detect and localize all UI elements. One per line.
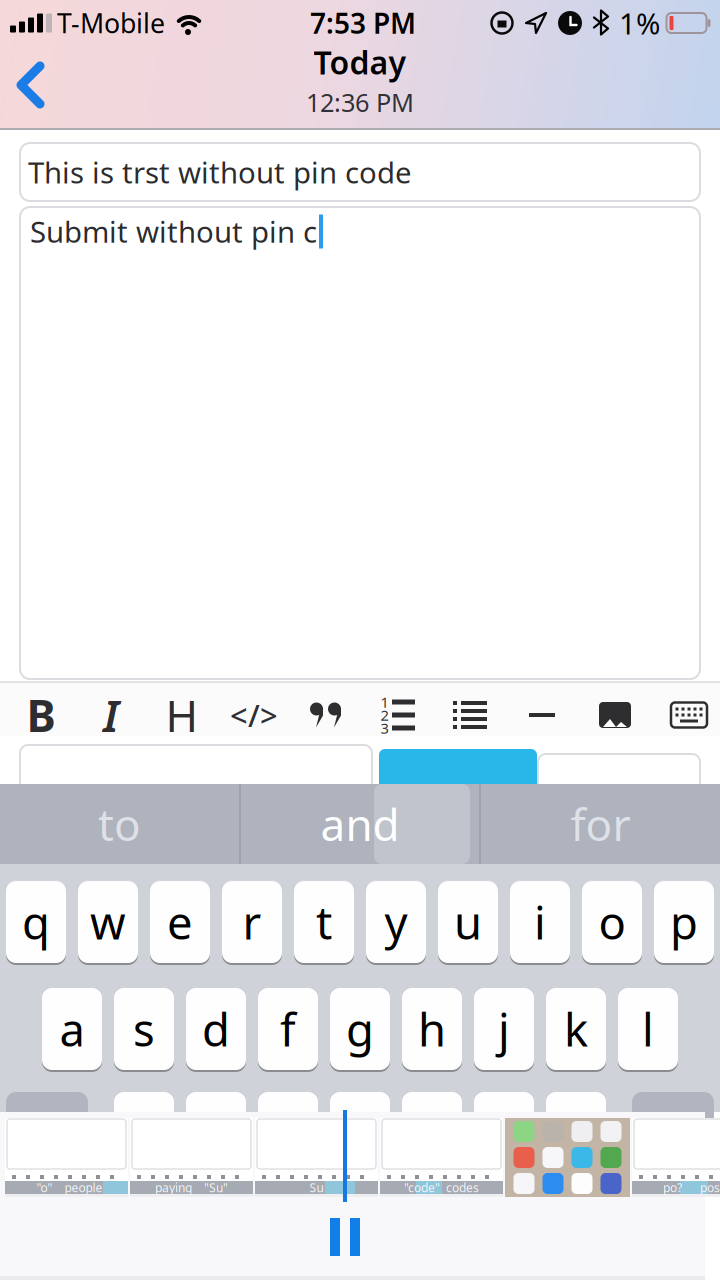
- button[interactable]: [6, 1091, 88, 1175]
- staticText: </>: [230, 695, 278, 735]
- button[interactable]: z: [114, 1091, 174, 1175]
- staticText: r: [242, 892, 261, 952]
- staticText: t: [316, 892, 332, 952]
- button[interactable]: j: [474, 987, 534, 1071]
- staticText: H: [165, 686, 198, 744]
- staticText: Su: [309, 1179, 323, 1195]
- staticText: m: [555, 1103, 597, 1163]
- button[interactable]: for: [481, 784, 720, 864]
- staticText: 7:53 PM: [310, 4, 416, 42]
- staticText: I: [103, 686, 119, 744]
- staticText: v: [348, 1103, 371, 1163]
- button[interactable]: [0, 64, 45, 108]
- staticText: 1: [380, 692, 388, 712]
- button[interactable]: [578, 683, 652, 747]
- button[interactable]: w: [78, 880, 138, 964]
- staticText: i: [534, 892, 546, 952]
- staticText: l: [642, 999, 654, 1059]
- button[interactable]: c: [258, 1091, 318, 1175]
- button[interactable]: r: [222, 880, 282, 964]
- button[interactable]: q: [6, 880, 66, 964]
- button[interactable]: k: [546, 987, 606, 1071]
- staticText: 12:36 PM: [306, 85, 414, 119]
- staticText: c: [277, 1103, 299, 1163]
- button[interactable]: I: [76, 683, 146, 747]
- staticText: Submit without pin c: [30, 212, 317, 251]
- button[interactable]: a: [42, 987, 102, 1071]
- staticText: "o" people: [30, 1179, 102, 1195]
- button[interactable]: m: [546, 1091, 606, 1175]
- button[interactable]: b: [402, 1091, 462, 1175]
- staticText: 3: [380, 718, 388, 738]
- staticText: k: [564, 999, 588, 1059]
- button[interactable]: [379, 749, 537, 801]
- staticText: z: [133, 1103, 154, 1163]
- staticText: d: [202, 999, 230, 1059]
- staticText: j: [498, 999, 510, 1059]
- button[interactable]: n: [474, 1091, 534, 1175]
- button[interactable]: to: [0, 784, 239, 864]
- staticText: T-Mobile: [57, 5, 165, 41]
- button[interactable]: B: [6, 683, 76, 747]
- staticText: to: [98, 795, 141, 853]
- button[interactable]: </>: [218, 683, 290, 747]
- staticText: 1%: [619, 3, 660, 42]
- staticText: Today: [313, 41, 406, 83]
- button[interactable]: [313, 1208, 377, 1266]
- staticText: o: [598, 892, 625, 952]
- staticText: w: [90, 892, 126, 952]
- staticText: q: [22, 892, 50, 952]
- staticText: po? post: [663, 1179, 720, 1195]
- button[interactable]: H: [146, 683, 218, 747]
- staticText: f: [280, 999, 296, 1059]
- staticText: y: [384, 892, 407, 952]
- staticText: "code" codes: [404, 1179, 479, 1195]
- staticText: x: [204, 1103, 228, 1163]
- staticText: e: [167, 892, 193, 952]
- button[interactable]: [632, 1092, 714, 1174]
- button[interactable]: [434, 683, 506, 747]
- button[interactable]: y: [366, 880, 426, 964]
- button[interactable]: d: [186, 987, 246, 1071]
- staticText: s: [133, 999, 155, 1059]
- button[interactable]: [506, 683, 578, 747]
- staticText: This is trst without pin code: [28, 152, 412, 191]
- staticText: g: [346, 999, 374, 1059]
- button[interactable]: [652, 683, 720, 747]
- button[interactable]: e: [150, 880, 210, 964]
- button[interactable]: t: [294, 880, 354, 964]
- button[interactable]: h: [402, 987, 462, 1071]
- staticText: u: [454, 892, 482, 952]
- staticText: for: [570, 795, 630, 853]
- button[interactable]: [538, 754, 700, 802]
- staticText: 2: [380, 705, 388, 725]
- staticText: B: [26, 686, 55, 744]
- button[interactable]: 1: [362, 683, 434, 747]
- button[interactable]: g: [330, 987, 390, 1071]
- button[interactable]: and: [241, 784, 479, 864]
- button[interactable]: f: [258, 987, 318, 1071]
- button[interactable]: i: [510, 880, 570, 964]
- button[interactable]: u: [438, 880, 498, 964]
- staticText: b: [418, 1103, 446, 1163]
- button[interactable]: [290, 683, 362, 747]
- staticText: paying "Su": [155, 1179, 228, 1195]
- button[interactable]: o: [582, 880, 642, 964]
- staticText: p: [670, 892, 698, 952]
- button[interactable]: p: [654, 880, 714, 964]
- button[interactable]: v: [330, 1091, 390, 1175]
- button[interactable]: s: [114, 987, 174, 1071]
- button[interactable]: x: [186, 1091, 246, 1175]
- staticText: n: [490, 1103, 518, 1163]
- button[interactable]: l: [618, 987, 678, 1071]
- staticText: and: [320, 795, 399, 853]
- staticText: a: [59, 999, 84, 1059]
- staticText: h: [418, 999, 446, 1059]
